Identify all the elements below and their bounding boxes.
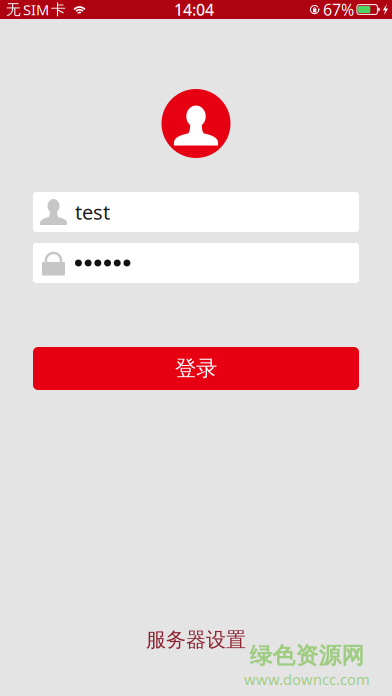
staticText: test xyxy=(75,199,110,225)
staticText: SIM xyxy=(23,0,49,19)
staticText: 67% xyxy=(323,0,354,20)
staticText: 卡 xyxy=(51,0,66,18)
staticText: 服务器设置 xyxy=(146,627,246,652)
button[interactable]: 服务器设置 xyxy=(134,621,258,658)
staticText: www.downcc.com xyxy=(244,669,370,689)
staticText: 14:04 xyxy=(174,0,214,20)
button[interactable]: 登录 xyxy=(33,347,359,390)
staticText: 登录 xyxy=(175,355,217,382)
staticText: 绿色资源网 xyxy=(249,642,364,669)
staticText: 无 xyxy=(6,0,21,18)
